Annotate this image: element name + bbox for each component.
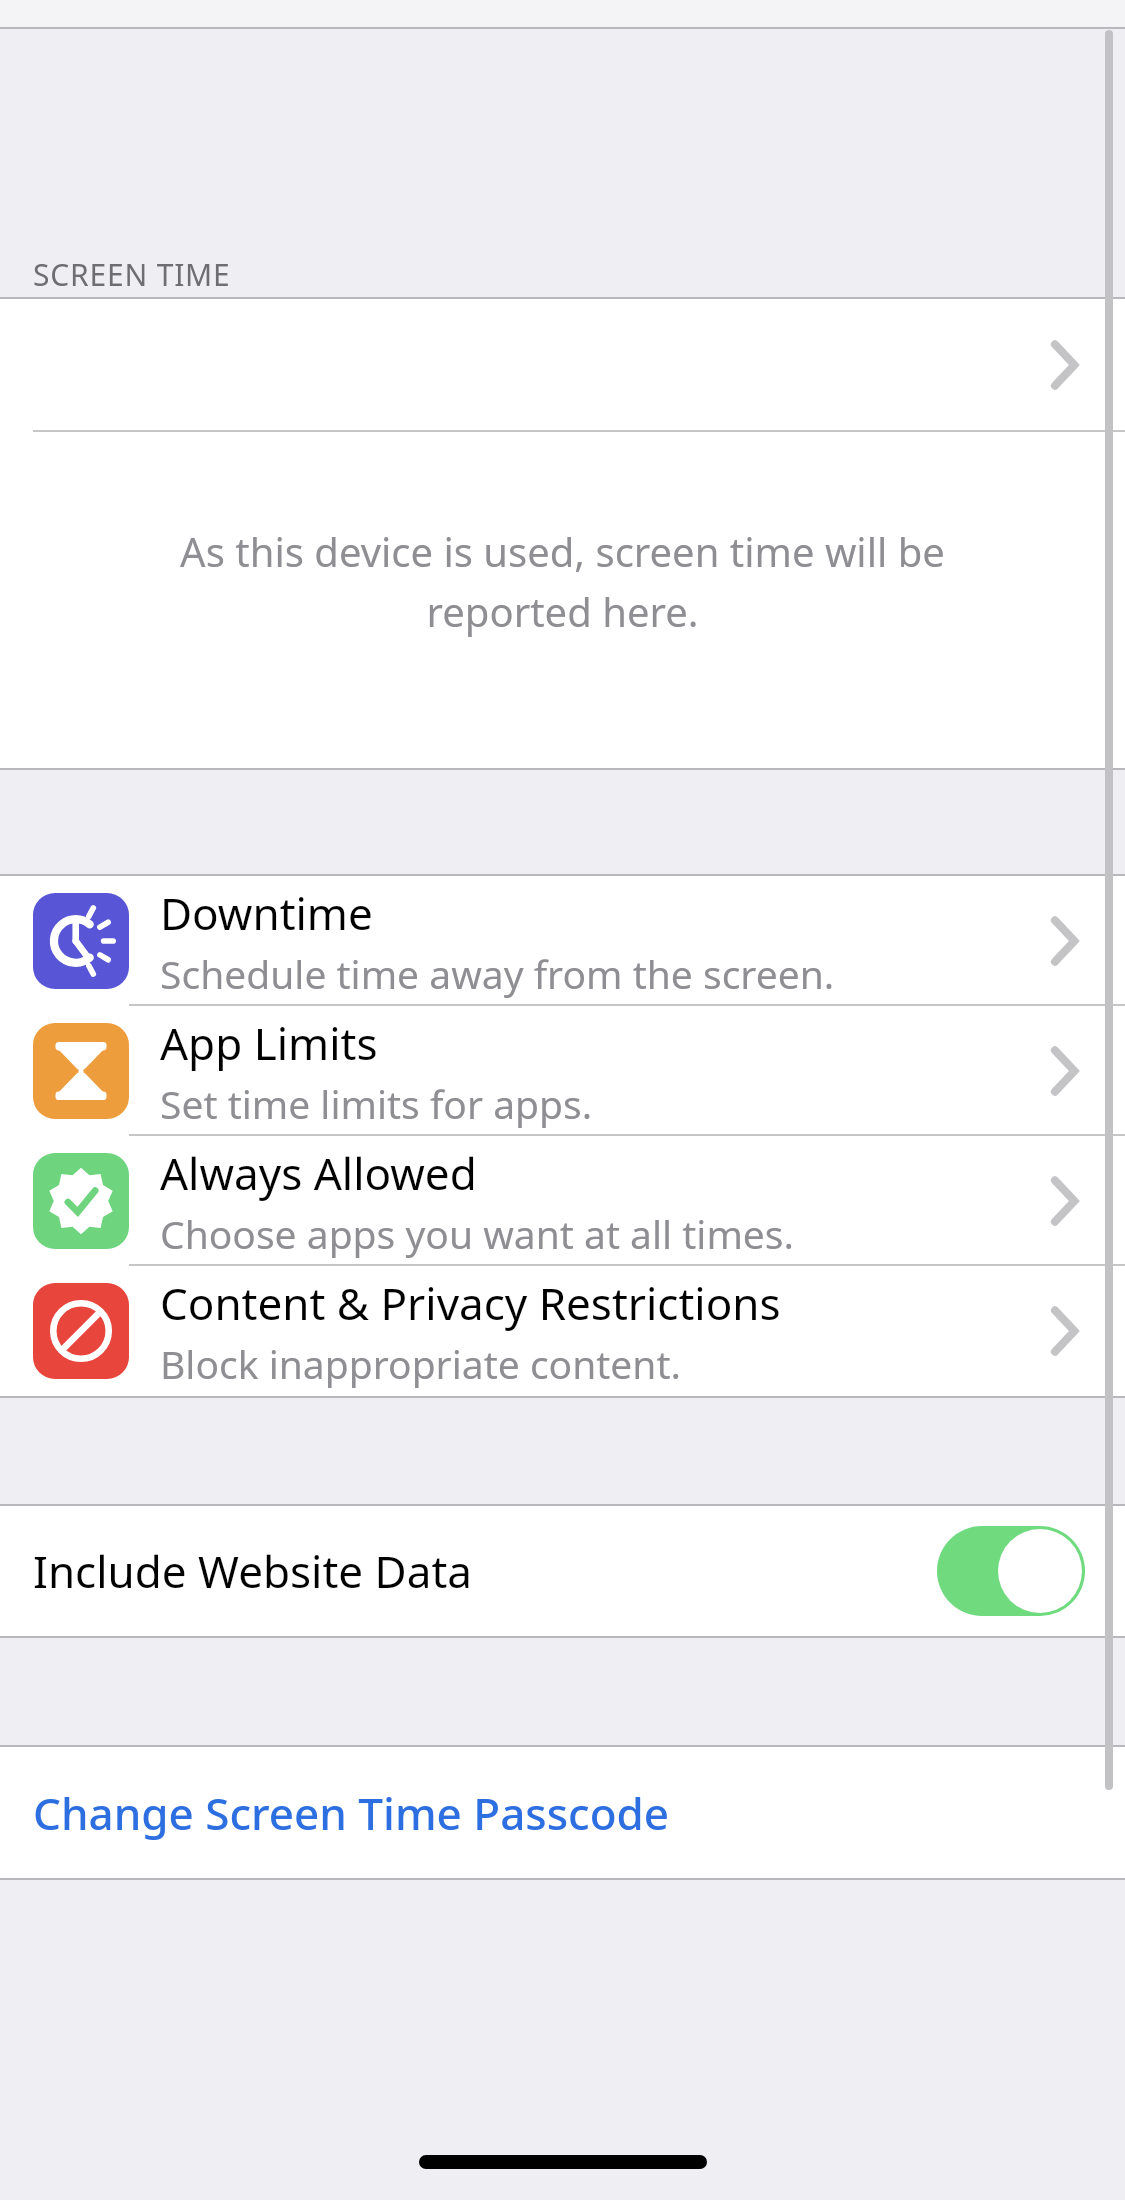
- staticText: Schedule time away from the screen.: [160, 947, 835, 1000]
- staticText: Always Allowed: [160, 1143, 477, 1203]
- button[interactable]: Screen time details: [0, 299, 1125, 430]
- button[interactable]: Include Website Data toggle, on: [937, 1526, 1085, 1616]
- button[interactable]: Content & Privacy Restrictions: [0, 1266, 1125, 1396]
- staticText: App Limits: [160, 1013, 378, 1073]
- staticText: Downtime: [160, 883, 373, 943]
- staticText: Change Screen Time Passcode: [33, 1783, 670, 1843]
- staticText: Content & Privacy Restrictions: [160, 1273, 781, 1333]
- button[interactable]: Change Screen Time Passcode: [0, 1747, 1125, 1878]
- button[interactable]: App Limits: [0, 1006, 1125, 1136]
- button[interactable]: Downtime: [0, 876, 1125, 1006]
- staticText: Block inappropriate content.: [160, 1337, 682, 1390]
- staticText: As this device is used, screen time will…: [180, 524, 945, 639]
- button[interactable]: Always Allowed: [0, 1136, 1125, 1266]
- staticText: Choose apps you want at all times.: [160, 1207, 794, 1260]
- staticText: Include Website Data: [33, 1541, 472, 1601]
- staticText: SCREEN TIME: [33, 254, 231, 295]
- button[interactable]: Include Website Data: [0, 1506, 1125, 1636]
- staticText: Set time limits for apps.: [160, 1077, 593, 1130]
